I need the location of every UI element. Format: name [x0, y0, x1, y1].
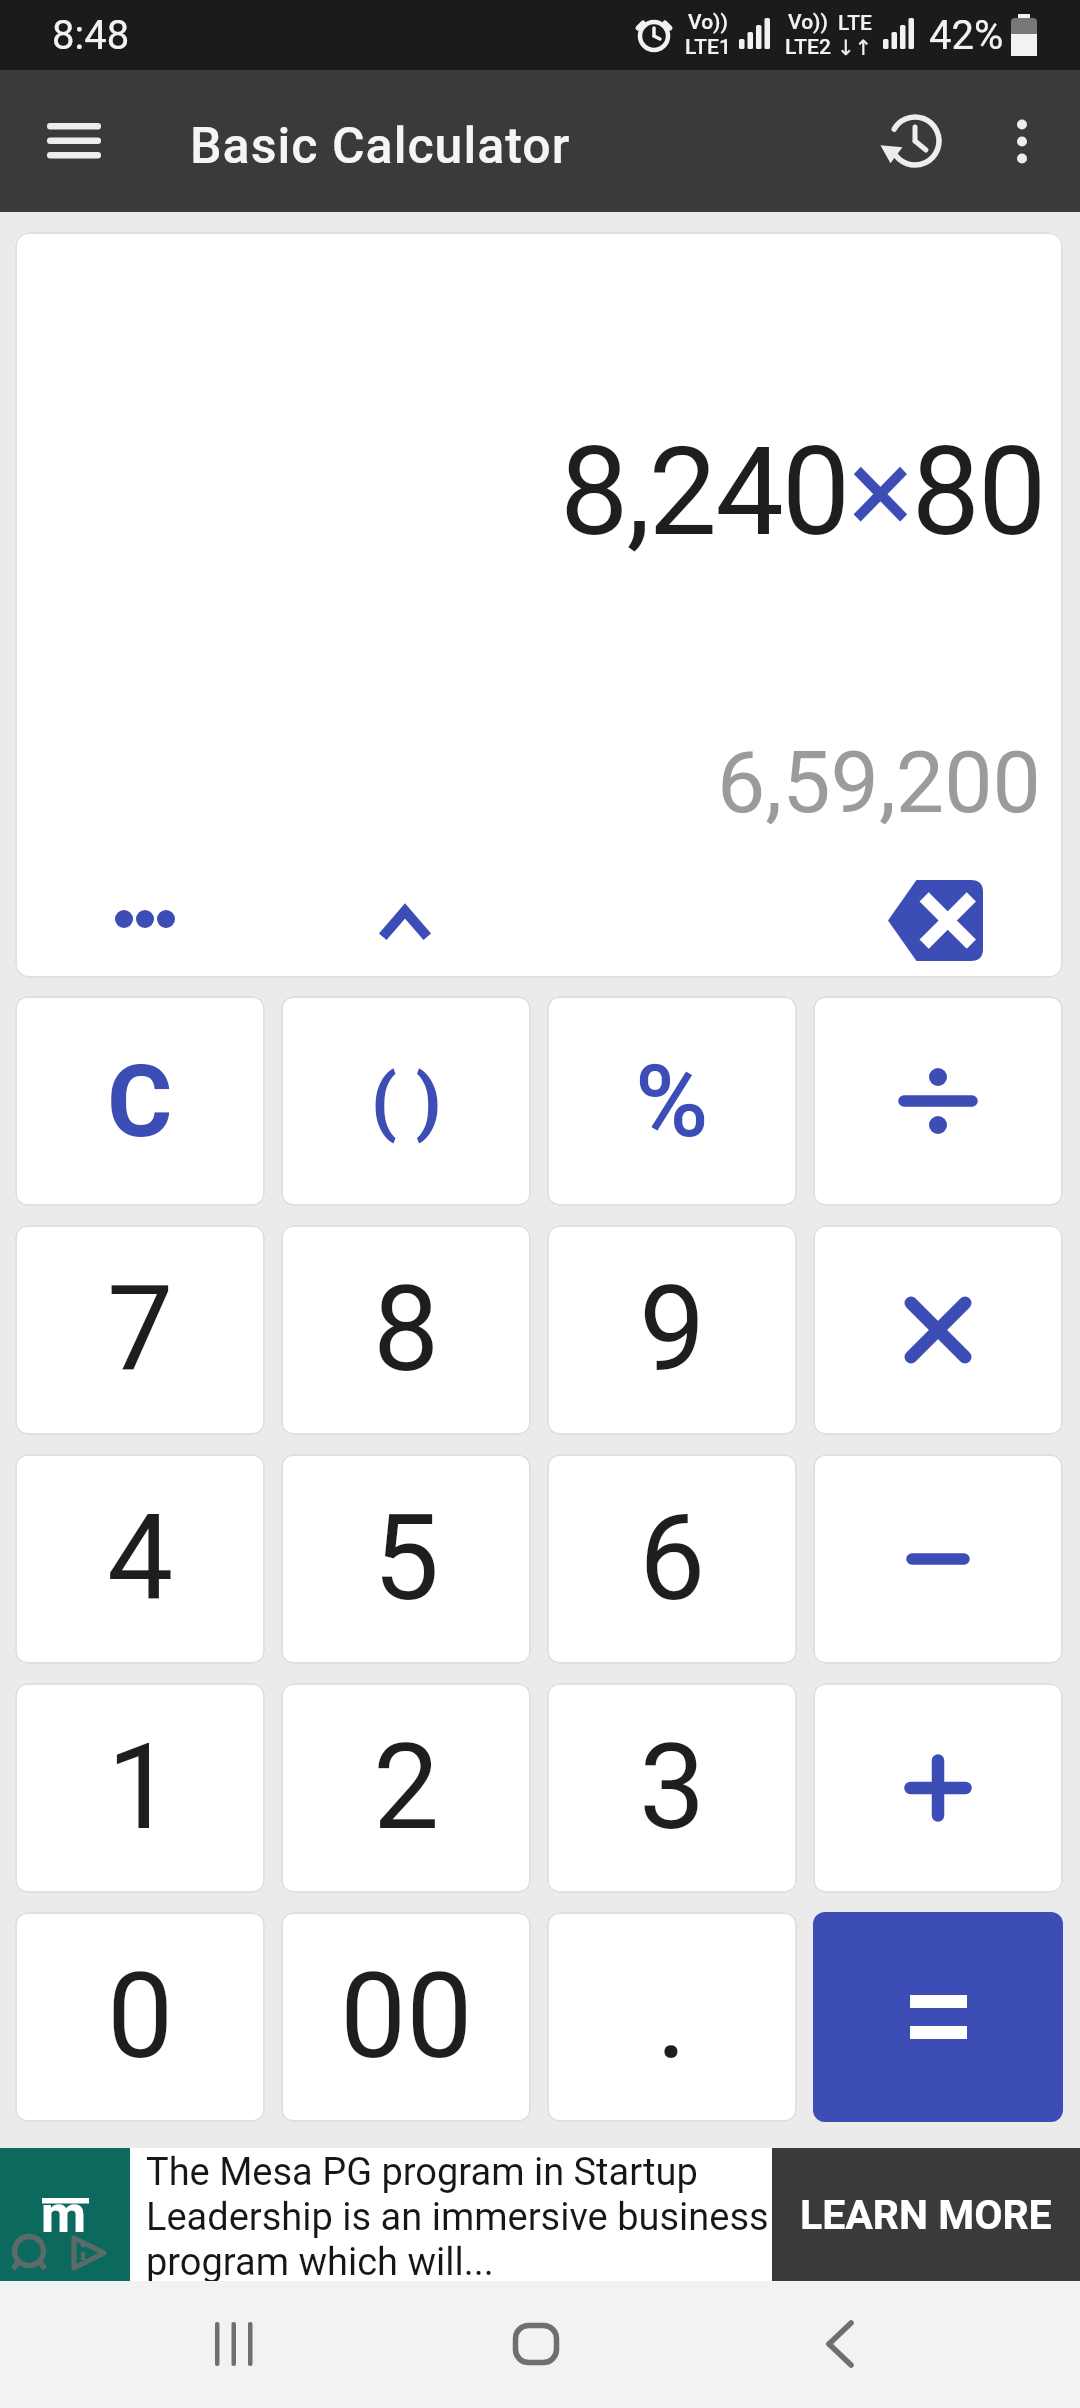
button[interactable] — [999, 118, 1045, 164]
staticText: 8:48 — [52, 12, 130, 59]
button[interactable]: The Mesa PG program in Startup — [130, 2148, 772, 2281]
button[interactable]: ( ) — [281, 996, 531, 1206]
button[interactable]: LEARN MORE — [772, 2148, 1080, 2281]
staticText: 9 — [639, 1261, 706, 1399]
button[interactable] — [496, 2304, 576, 2384]
staticText: 00 — [340, 1948, 473, 2086]
button[interactable] — [377, 900, 433, 944]
staticText: 7 — [107, 1261, 174, 1399]
staticText: program which will... — [146, 2240, 494, 2281]
button[interactable]: 2 — [281, 1683, 531, 1893]
staticText: 6,59,200 — [717, 732, 1041, 833]
staticText: The Mesa PG program in Startup — [146, 2150, 698, 2195]
staticText: m — [41, 2184, 87, 2245]
staticText: 2 — [373, 1719, 440, 1857]
staticText: 42% — [929, 12, 1004, 59]
button[interactable] — [113, 902, 177, 936]
button[interactable] — [195, 2304, 275, 2384]
staticText: Vo)) — [688, 10, 728, 35]
staticText: C — [107, 1043, 173, 1160]
button[interactable] — [47, 114, 101, 168]
staticText: ↓↑ — [837, 36, 873, 60]
button[interactable]: 5 — [281, 1454, 531, 1664]
button[interactable]: 00 — [281, 1912, 531, 2122]
button[interactable]: . — [547, 1912, 797, 2122]
button[interactable] — [883, 111, 943, 171]
staticText: 0 — [107, 1948, 174, 2086]
button[interactable] — [880, 872, 990, 968]
button[interactable]: 3 — [547, 1683, 797, 1893]
staticText: 3 — [639, 1719, 706, 1857]
staticText: 8 — [373, 1261, 440, 1399]
button[interactable]: 0 — [15, 1912, 265, 2122]
button[interactable]: C — [15, 996, 265, 1206]
staticText: 8,240×80 — [560, 421, 1045, 564]
button[interactable] — [800, 2304, 880, 2384]
staticText: . — [656, 1948, 688, 2086]
staticText: 6 — [639, 1490, 706, 1628]
button[interactable]: 9 — [547, 1225, 797, 1435]
button[interactable] — [813, 1683, 1063, 1893]
staticText: LTE — [838, 11, 872, 36]
button[interactable]: % — [547, 996, 797, 1206]
button[interactable] — [813, 1454, 1063, 1664]
button[interactable]: 7 — [15, 1225, 265, 1435]
button[interactable]: 8 — [281, 1225, 531, 1435]
button[interactable] — [813, 1912, 1063, 2122]
staticText: % — [635, 1043, 709, 1160]
button[interactable]: 4 — [15, 1454, 265, 1664]
button[interactable] — [813, 996, 1063, 1206]
staticText: LTE1 — [685, 35, 731, 60]
staticText: ( ) — [371, 1058, 442, 1145]
staticText: LEARN MORE — [800, 2191, 1052, 2239]
staticText: 5 — [373, 1490, 440, 1628]
button[interactable]: 6 — [547, 1454, 797, 1664]
button[interactable] — [813, 1225, 1063, 1435]
button[interactable]: m — [0, 2148, 130, 2281]
staticText: 4 — [107, 1490, 174, 1628]
staticText: 1 — [107, 1719, 174, 1857]
staticText: Leadership is an immersive business — [146, 2195, 769, 2240]
staticText: LTE2 — [785, 35, 831, 60]
staticText: Basic Calculator — [190, 117, 571, 176]
staticText: Vo)) — [788, 10, 828, 35]
button[interactable]: 1 — [15, 1683, 265, 1893]
